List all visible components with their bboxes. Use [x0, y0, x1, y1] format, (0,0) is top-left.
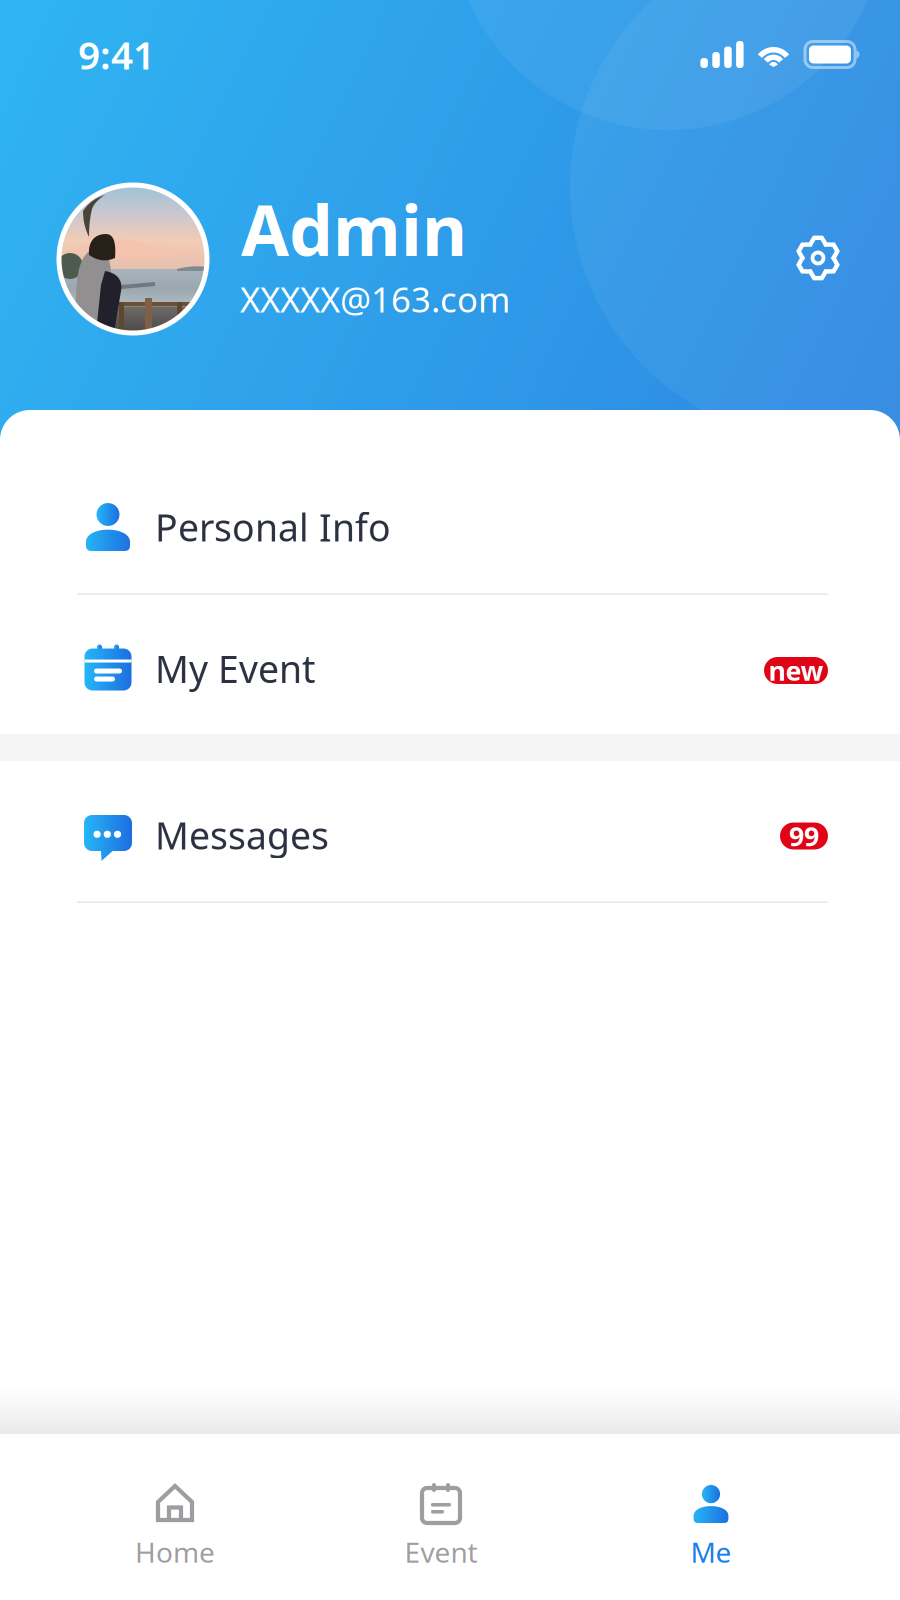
button[interactable]: Messages	[0, 761, 900, 903]
staticText: 99	[789, 818, 819, 854]
button[interactable]: Home	[95, 1480, 255, 1580]
button[interactable]: Personal Info	[0, 459, 900, 595]
staticText: Personal Info	[155, 502, 391, 552]
staticText: Admin	[241, 183, 467, 275]
button[interactable]: Event	[361, 1480, 521, 1580]
button[interactable]: Settings	[783, 223, 853, 293]
staticText: Me	[690, 1533, 731, 1571]
staticText: Event	[404, 1533, 477, 1571]
button[interactable]: Me	[631, 1480, 791, 1580]
staticText: My Event	[155, 644, 315, 693]
button[interactable]: My Event	[0, 595, 900, 734]
staticText: Home	[135, 1533, 215, 1571]
staticText: XXXXX@163.com	[240, 276, 510, 322]
staticText: 9:41	[78, 29, 155, 80]
staticText: Messages	[155, 810, 329, 860]
staticText: new	[768, 653, 823, 688]
